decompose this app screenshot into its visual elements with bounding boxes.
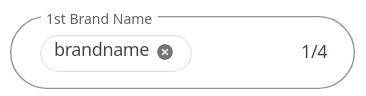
staticText: 1/4	[301, 39, 328, 64]
staticText: 1st Brand Name	[46, 9, 153, 28]
button[interactable]: Remove brandname	[157, 44, 173, 60]
staticText: brandname	[54, 37, 150, 62]
button[interactable]: brandname	[40, 35, 192, 72]
